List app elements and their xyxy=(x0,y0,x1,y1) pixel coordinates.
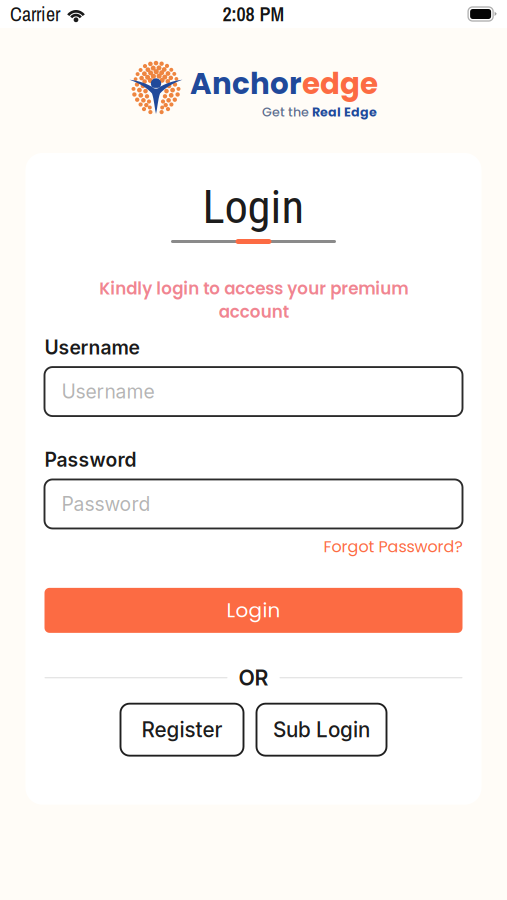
staticText: Username xyxy=(61,380,154,403)
staticText: Forgot Password? xyxy=(323,535,462,558)
staticText: Real Edge xyxy=(312,103,377,121)
staticText: 2:08 PM xyxy=(222,0,284,27)
button[interactable]: Sub Login xyxy=(256,704,386,756)
staticText: Carrier xyxy=(10,0,60,27)
staticText: Get the xyxy=(262,103,312,121)
staticText: Kindly login to access your premium acco… xyxy=(99,277,408,324)
staticText: Username xyxy=(44,336,139,359)
staticText: edge xyxy=(302,63,378,104)
staticText: Login xyxy=(202,180,304,234)
staticText: Anchor xyxy=(190,63,302,104)
staticText: Sub Login xyxy=(273,717,370,742)
staticText: Register xyxy=(141,717,222,742)
staticText: Login xyxy=(226,596,280,624)
button[interactable]: Register xyxy=(120,704,243,756)
button[interactable]: Login xyxy=(44,588,462,633)
staticText: OR xyxy=(238,665,268,691)
staticText: Password xyxy=(61,492,150,516)
staticText: Password xyxy=(44,448,136,471)
button[interactable]: Forgot Password? xyxy=(44,528,462,558)
